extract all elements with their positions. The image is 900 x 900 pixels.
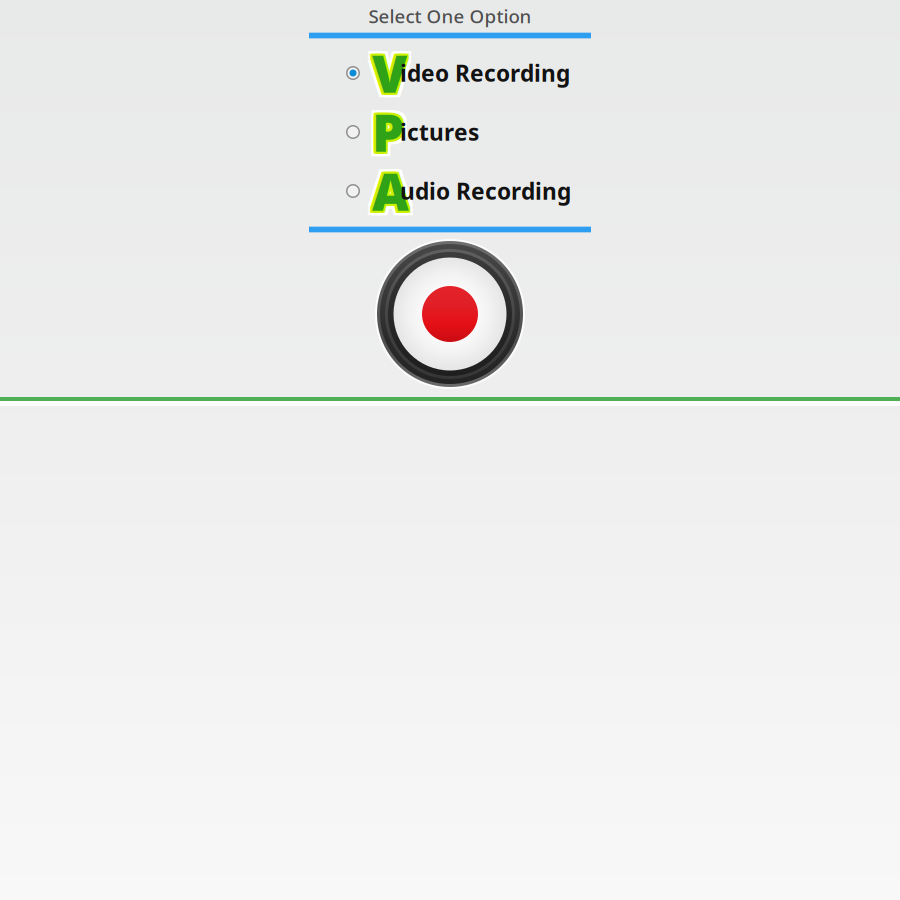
staticText: A [372,157,409,225]
staticText: ictures [400,117,479,147]
button[interactable]: Record [375,239,525,389]
staticText: V [370,41,405,109]
button[interactable]: A [340,165,592,217]
staticText: V [374,39,409,107]
staticText: V [370,39,405,107]
staticText: P [374,96,406,164]
staticText: P [376,98,408,166]
staticText: A [370,159,407,227]
staticText: V [367,44,402,111]
staticText: P [372,96,404,164]
staticText: V [372,39,407,107]
staticText: V [376,39,411,107]
staticText: A [367,157,404,225]
staticText: V [372,37,407,105]
staticText: P [372,100,404,168]
button[interactable]: V [340,47,592,99]
staticText: V [367,39,402,107]
staticText: A [376,157,413,225]
staticText: ideo Recording [400,58,570,88]
staticText: P [376,103,408,170]
staticText: P [374,100,406,168]
staticText: P [370,96,402,164]
staticText: V [376,44,411,111]
staticText: A [372,162,409,229]
staticText: A [370,157,407,225]
staticText: P [370,98,402,166]
staticText: P [370,100,402,168]
staticText: A [376,162,413,229]
staticText: A [372,153,409,220]
staticText: P [374,98,406,166]
staticText: P [367,103,399,170]
staticText: V [367,35,402,102]
staticText: V [374,37,409,105]
staticText: V [372,44,407,111]
staticText: V [372,41,407,109]
staticText: A [372,159,409,227]
staticText: A [376,153,413,220]
staticText: V [372,35,407,102]
staticText: V [374,41,409,109]
staticText: A [370,155,407,223]
staticText: A [367,162,404,229]
staticText: P [367,98,399,166]
staticText: A [374,159,411,227]
staticText: P [372,103,404,170]
staticText: A [372,155,409,223]
staticText: P [372,94,404,161]
staticText: Select One Option [368,4,531,28]
button[interactable]: P [340,106,592,158]
staticText: A [367,153,404,220]
staticText: A [374,157,411,225]
staticText: P [372,98,404,166]
staticText: V [370,37,405,105]
staticText: A [374,155,411,223]
staticText: udio Recording [400,176,571,206]
staticText: P [376,94,408,161]
staticText: P [367,94,399,161]
staticText: V [376,35,411,102]
